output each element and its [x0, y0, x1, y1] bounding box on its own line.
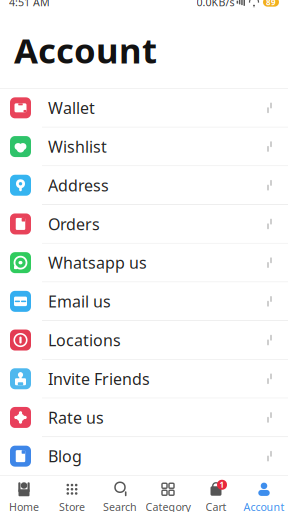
button[interactable]: Category — [144, 476, 192, 512]
button[interactable]: Store — [48, 476, 96, 512]
staticText: Invite Friends — [48, 368, 150, 389]
staticText: 4:51 AM — [9, 0, 50, 9]
staticText: Whatsapp us — [48, 252, 147, 273]
staticText: Orders — [48, 213, 100, 234]
staticText: Locations — [48, 329, 121, 351]
button[interactable]: Rate us — [0, 398, 288, 437]
staticText: 1 — [219, 479, 224, 490]
button[interactable]: Account — [240, 476, 288, 512]
button[interactable]: 1 — [192, 476, 240, 512]
staticText: Wishlist — [48, 136, 107, 157]
button[interactable]: Invite Friends — [0, 360, 288, 398]
staticText: Account — [243, 500, 284, 512]
staticText: Store — [59, 500, 85, 512]
staticText: Blog — [48, 445, 82, 467]
button[interactable]: Orders — [0, 205, 288, 244]
button[interactable]: Wishlist — [0, 128, 288, 166]
staticText: 89 — [266, 0, 276, 7]
button[interactable]: Email us — [0, 282, 288, 321]
button[interactable]: Blog — [0, 437, 288, 475]
staticText: Rate us — [48, 407, 104, 428]
button[interactable]: Address — [0, 166, 288, 205]
staticText: Address — [48, 175, 109, 196]
staticText: Category — [145, 500, 190, 512]
staticText: Home — [9, 500, 39, 512]
button[interactable]: Search — [96, 476, 144, 512]
button[interactable]: Whatsapp us — [0, 244, 288, 282]
staticText: Wallet — [48, 97, 95, 118]
staticText: Account — [14, 27, 157, 73]
button[interactable]: Locations — [0, 321, 288, 360]
staticText: 0.0KB/s — [197, 0, 235, 9]
staticText: Email us — [48, 291, 111, 312]
button[interactable]: Wallet — [0, 89, 288, 128]
staticText: Search — [103, 500, 137, 512]
button[interactable]: Home — [0, 476, 48, 512]
staticText: Cart — [205, 500, 226, 512]
